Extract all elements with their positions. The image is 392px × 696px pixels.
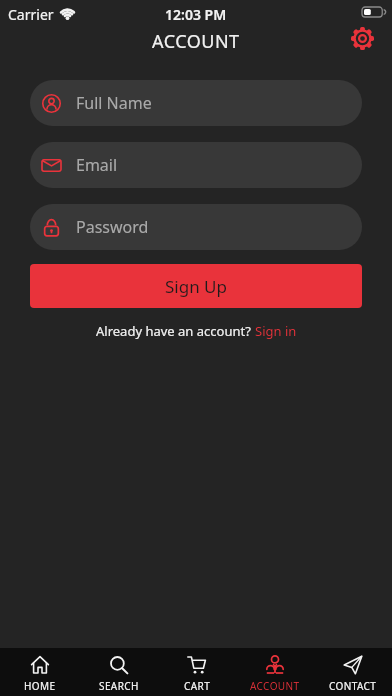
staticText: Password [76, 216, 149, 238]
staticText: Sign Up [165, 275, 227, 298]
button[interactable]: HOME [0, 648, 79, 696]
button[interactable]: Sign in [255, 322, 297, 340]
staticText: Full Name [76, 92, 152, 114]
button[interactable]: ACCOUNT [236, 648, 314, 696]
button[interactable]: Full Name [30, 80, 362, 126]
button[interactable] [351, 27, 374, 50]
staticText: 12:03 PM [165, 5, 227, 24]
button[interactable]: Sign Up [30, 264, 362, 308]
staticText: Already have an account? [96, 322, 255, 340]
button[interactable]: CART [158, 648, 236, 696]
button[interactable]: CONTACT [314, 648, 392, 696]
button[interactable]: SEARCH [79, 648, 158, 696]
staticText: Email [76, 154, 118, 176]
staticText: Sign in [255, 322, 297, 340]
staticText: Carrier [8, 5, 54, 24]
button[interactable]: Email [30, 142, 362, 188]
staticText: ACCOUNT [152, 29, 240, 54]
staticText: CART [184, 679, 211, 693]
staticText: ACCOUNT [250, 679, 300, 693]
button[interactable]: Password [30, 204, 362, 250]
staticText: CONTACT [329, 679, 377, 693]
staticText: HOME [24, 679, 56, 693]
staticText: SEARCH [99, 679, 139, 693]
